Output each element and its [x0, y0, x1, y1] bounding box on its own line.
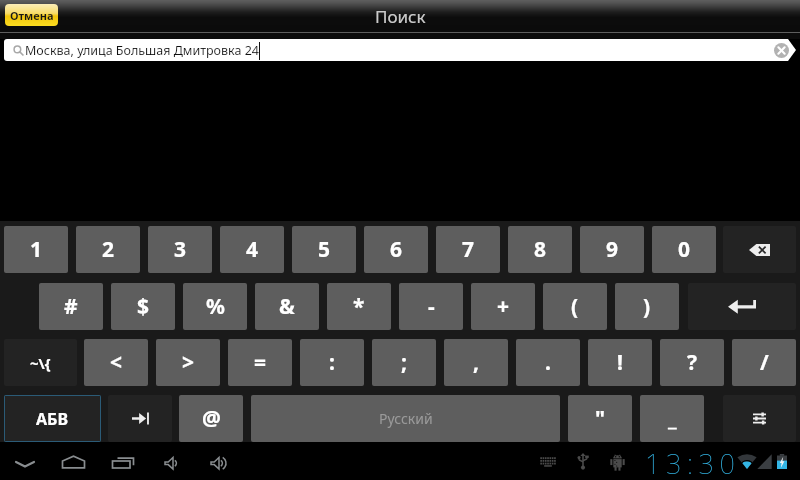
- button[interactable]: !: [588, 339, 652, 386]
- button[interactable]: АБВ: [4, 395, 101, 442]
- staticText: <: [110, 348, 123, 377]
- button[interactable]: 1: [4, 226, 68, 273]
- button[interactable]: Русский: [251, 395, 560, 442]
- button[interactable]: 2: [76, 226, 140, 273]
- button[interactable]: /: [732, 339, 796, 386]
- staticText: АБВ: [36, 408, 69, 430]
- staticText: Москва, улица Большая Дмитровка 24: [25, 42, 259, 59]
- button[interactable]: ~\{: [4, 339, 77, 386]
- staticText: 2: [102, 235, 115, 264]
- button[interactable]: 5: [292, 226, 356, 273]
- button[interactable]: _: [640, 395, 704, 442]
- button[interactable]: Tab: [108, 395, 172, 442]
- staticText: 3: [174, 235, 187, 264]
- button[interactable]: .: [516, 339, 580, 386]
- button[interactable]: +: [471, 283, 535, 330]
- staticText: $: [137, 292, 150, 321]
- button[interactable]: =: [228, 339, 292, 386]
- button[interactable]: 9: [580, 226, 644, 273]
- button[interactable]: Backspace: [723, 226, 796, 273]
- staticText: ": [595, 404, 606, 433]
- staticText: ?: [687, 348, 698, 377]
- button[interactable]: 7: [436, 226, 500, 273]
- staticText: Отмена: [10, 8, 54, 23]
- staticText: /: [760, 348, 769, 377]
- button[interactable]: Recent apps: [105, 445, 141, 477]
- staticText: ~\{: [30, 353, 51, 373]
- staticText: ): [643, 292, 651, 321]
- button[interactable]: Москва, улица Большая Дмитровка 24: [4, 39, 796, 61]
- button[interactable]: 6: [364, 226, 428, 273]
- staticText: %: [206, 292, 225, 321]
- staticText: (: [571, 292, 579, 321]
- staticText: 13:30: [645, 445, 741, 480]
- button[interactable]: 8: [508, 226, 572, 273]
- staticText: 5: [318, 235, 331, 264]
- staticText: !: [617, 348, 623, 377]
- button[interactable]: -: [399, 283, 463, 330]
- button[interactable]: ?: [660, 339, 724, 386]
- button[interactable]: &: [255, 283, 319, 330]
- staticText: >: [182, 348, 195, 377]
- button[interactable]: *: [327, 283, 391, 330]
- staticText: -: [428, 292, 435, 321]
- staticText: _: [668, 404, 677, 433]
- staticText: 1: [30, 235, 43, 264]
- button[interactable]: (: [543, 283, 607, 330]
- button[interactable]: :: [300, 339, 364, 386]
- button[interactable]: Отмена: [5, 4, 58, 26]
- staticText: Поиск: [375, 5, 426, 28]
- staticText: ,: [473, 348, 479, 377]
- staticText: 4: [246, 235, 259, 264]
- button[interactable]: 4: [220, 226, 284, 273]
- button[interactable]: Volume up: [201, 445, 237, 477]
- staticText: 0: [678, 235, 691, 264]
- button[interactable]: >: [156, 339, 220, 386]
- staticText: =: [254, 348, 267, 377]
- button[interactable]: ": [568, 395, 632, 442]
- button[interactable]: <: [84, 339, 148, 386]
- staticText: .: [545, 348, 551, 377]
- button[interactable]: Enter: [688, 283, 796, 330]
- button[interactable]: $: [111, 283, 175, 330]
- button[interactable]: Keyboard settings: [723, 395, 796, 442]
- staticText: 9: [606, 235, 619, 264]
- button[interactable]: %: [183, 283, 247, 330]
- button[interactable]: ): [615, 283, 679, 330]
- staticText: *: [353, 292, 365, 321]
- staticText: 6: [390, 235, 403, 264]
- staticText: :: [329, 348, 335, 377]
- staticText: @: [202, 404, 221, 433]
- staticText: &: [279, 292, 295, 321]
- button[interactable]: @: [179, 395, 243, 442]
- staticText: ;: [401, 348, 407, 377]
- button[interactable]: ,: [444, 339, 508, 386]
- button[interactable]: 0: [652, 226, 716, 273]
- staticText: 7: [462, 235, 475, 264]
- button[interactable]: Clear text: [774, 43, 789, 58]
- button[interactable]: #: [39, 283, 103, 330]
- staticText: +: [497, 292, 510, 321]
- staticText: 8: [534, 235, 547, 264]
- button[interactable]: Home: [56, 445, 92, 477]
- staticText: Русский: [379, 409, 433, 428]
- button[interactable]: Hide keyboard: [7, 445, 43, 477]
- button[interactable]: Volume down: [155, 445, 191, 477]
- staticText: #: [64, 292, 78, 321]
- button[interactable]: ;: [372, 339, 436, 386]
- button[interactable]: 3: [148, 226, 212, 273]
